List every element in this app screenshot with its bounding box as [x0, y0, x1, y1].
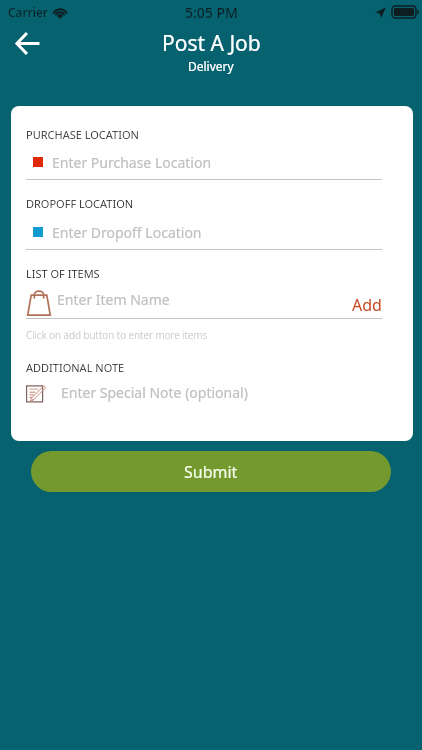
staticText: PURCHASE LOCATION — [26, 127, 139, 142]
button[interactable]: Add — [344, 288, 390, 319]
staticText: Enter Special Note (optional) — [61, 383, 248, 402]
staticText: DROPOFF LOCATION — [26, 196, 134, 211]
staticText: Carrier — [8, 4, 48, 20]
button[interactable]: Submit — [31, 451, 391, 492]
staticText: Enter Item Name — [57, 290, 170, 309]
staticText: Delivery — [188, 58, 234, 74]
button[interactable]: Enter Special Note (optional) — [26, 381, 382, 407]
staticText: Enter Dropoff Location — [52, 223, 202, 242]
staticText: Add — [352, 294, 382, 316]
button[interactable]: Enter Dropoff Location — [26, 218, 382, 250]
staticText: Post A Job — [162, 29, 261, 58]
staticText: Enter Purchase Location — [52, 153, 212, 172]
staticText: LIST OF ITEMS — [26, 266, 100, 281]
button[interactable]: Back — [6, 21, 50, 65]
button[interactable]: Enter Purchase Location — [26, 148, 382, 180]
staticText: Click on add button to enter more items — [26, 328, 208, 342]
staticText: Submit — [184, 461, 238, 483]
staticText: ADDITIONAL NOTE — [26, 360, 125, 375]
staticText: 5:05 PM — [185, 3, 238, 22]
